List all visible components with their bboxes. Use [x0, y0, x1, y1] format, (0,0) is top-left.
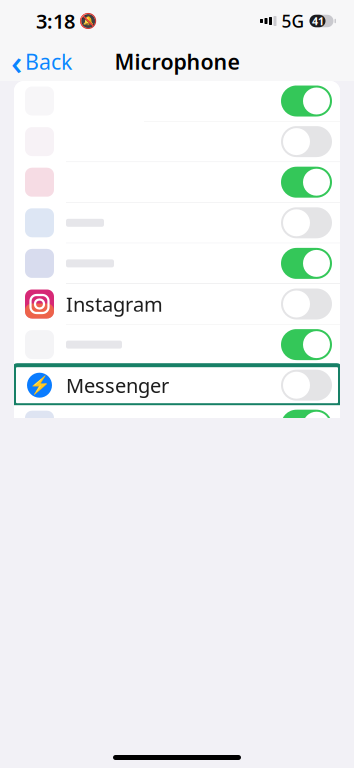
button[interactable]: [14, 122, 340, 162]
button[interactable]: [14, 325, 340, 365]
button[interactable]: Allow microphone access, on: [281, 329, 332, 360]
staticText: ‹: [11, 38, 22, 84]
staticText: Messenger: [66, 372, 169, 398]
button[interactable]: ⚡: [14, 365, 340, 405]
button[interactable]: Allow microphone access, off: [281, 288, 332, 319]
button[interactable]: [14, 162, 340, 202]
button[interactable]: Allow microphone access, off: [281, 370, 332, 401]
staticText: Microphone: [114, 47, 239, 76]
staticText: 5G: [281, 9, 304, 32]
button[interactable]: [14, 405, 340, 445]
button[interactable]: Allow microphone access, off: [281, 126, 332, 157]
staticText: 3:18: [36, 8, 75, 34]
button[interactable]: Instagram: [14, 284, 340, 324]
staticText: 41: [312, 14, 324, 28]
staticText: Back: [25, 47, 72, 76]
button[interactable]: Allow microphone access, on: [281, 410, 332, 441]
button[interactable]: Allow microphone access, on: [281, 167, 332, 198]
button[interactable]: Allow microphone access, off: [281, 207, 332, 238]
staticText: ⚡: [28, 375, 50, 395]
staticText: Instagram: [66, 291, 163, 317]
button[interactable]: [14, 203, 340, 243]
button[interactable]: Allow microphone access, on: [281, 248, 332, 279]
button[interactable]: ‹: [0, 42, 80, 80]
staticText: 🔕: [79, 13, 97, 29]
button[interactable]: Allow microphone access, on: [281, 85, 332, 116]
staticText: microphone will appear here.: [32, 743, 253, 764]
button[interactable]: [14, 243, 340, 283]
button[interactable]: [14, 81, 340, 121]
